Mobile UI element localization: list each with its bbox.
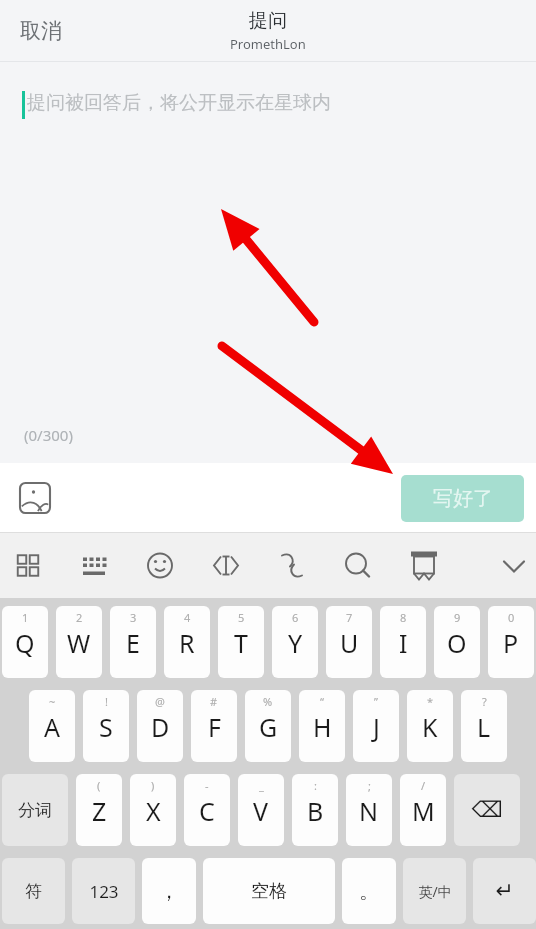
button[interactable]: / (400, 774, 446, 846)
button[interactable]: 123 (72, 858, 135, 924)
button[interactable]: Keyboard layout (66, 533, 99, 598)
button[interactable]: ! (83, 690, 129, 762)
staticText: # (210, 694, 218, 709)
staticText: * (427, 694, 434, 709)
staticText: (0/300) (24, 425, 73, 445)
staticText: D (151, 710, 170, 744)
staticText: Q (15, 626, 35, 660)
staticText: 写好了 (433, 486, 493, 511)
button[interactable]: @ (137, 690, 183, 762)
staticText: ; (368, 778, 371, 793)
staticText: ~ (49, 694, 56, 709)
button[interactable]: Text selection (198, 533, 231, 598)
staticText: 3 (130, 610, 137, 625)
staticText: L (477, 710, 491, 744)
button[interactable]: % (245, 690, 291, 762)
button[interactable]: * (407, 690, 453, 762)
button[interactable]: 0 (488, 606, 534, 678)
button[interactable]: # (191, 690, 237, 762)
button[interactable]: Emoji (132, 533, 165, 598)
button[interactable]: 3 (110, 606, 156, 678)
staticText: 取消 (20, 18, 62, 44)
button[interactable]: - (184, 774, 230, 846)
button[interactable]: ; (346, 774, 392, 846)
staticText: M (412, 794, 435, 828)
button[interactable]: 。 (342, 858, 396, 924)
button[interactable]: : (292, 774, 338, 846)
button[interactable]: Search (330, 533, 363, 598)
button[interactable]: 7 (326, 606, 372, 678)
staticText: 提问被回答后，将公开显示在星球内 (27, 91, 331, 115)
button[interactable]: ， (142, 858, 196, 924)
staticText: 9 (454, 610, 461, 625)
staticText: F (208, 710, 221, 744)
button[interactable]: 9 (434, 606, 480, 678)
button[interactable]: 英/中 (403, 858, 466, 924)
button[interactable]: 分词 (2, 774, 68, 846)
staticText: ( (97, 778, 101, 793)
button[interactable]: Hide keyboard (474, 533, 518, 598)
staticText: ? (482, 694, 487, 709)
staticText: - (205, 778, 209, 793)
staticText: G (259, 710, 278, 744)
staticText: 英/中 (418, 882, 452, 901)
staticText: : (314, 778, 317, 793)
button[interactable]: ↵ (473, 858, 536, 924)
staticText: T (234, 626, 248, 660)
staticText: 。 (359, 879, 379, 904)
button[interactable]: ⌫ (454, 774, 520, 846)
staticText: 8 (400, 610, 407, 625)
staticText: PromethLon (230, 35, 306, 53)
button[interactable]: ~ (29, 690, 75, 762)
staticText: B (307, 794, 324, 828)
staticText: 1 (22, 610, 29, 625)
staticText: / (421, 778, 426, 793)
staticText: ⌫ (471, 797, 503, 823)
button[interactable]: 空格 (203, 858, 335, 924)
button[interactable]: ( (76, 774, 122, 846)
button[interactable]: Add image (10, 473, 60, 523)
staticText: J (373, 710, 380, 744)
staticText: O (447, 626, 467, 660)
staticText: “ (320, 694, 324, 709)
staticText: X (146, 794, 161, 828)
button[interactable]: 8 (380, 606, 426, 678)
staticText: _ (259, 778, 264, 793)
staticText: R (179, 626, 195, 660)
button[interactable]: Apps (0, 533, 33, 598)
staticText: 5 (238, 610, 245, 625)
staticText: 123 (89, 880, 119, 903)
staticText: V (253, 794, 269, 828)
staticText: W (67, 626, 91, 660)
button[interactable]: 符 (2, 858, 65, 924)
button[interactable]: Attach (264, 533, 297, 598)
button[interactable]: Stickers (396, 533, 429, 598)
button[interactable]: 写好了 (401, 475, 524, 522)
button[interactable]: “ (299, 690, 345, 762)
staticText: 4 (184, 610, 191, 625)
button[interactable]: ” (353, 690, 399, 762)
staticText: ” (374, 694, 378, 709)
button[interactable]: ) (130, 774, 176, 846)
staticText: 7 (346, 610, 353, 625)
staticText: S (99, 710, 113, 744)
button[interactable]: ? (461, 690, 507, 762)
button[interactable]: 4 (164, 606, 210, 678)
staticText: K (422, 710, 438, 744)
button[interactable]: 5 (218, 606, 264, 678)
staticText: 分词 (18, 800, 52, 821)
staticText: I (399, 626, 408, 660)
button[interactable]: _ (238, 774, 284, 846)
staticText: Z (92, 794, 107, 828)
button[interactable]: 取消 (0, 0, 82, 62)
staticText: 6 (292, 610, 299, 625)
button[interactable]: 1 (2, 606, 48, 678)
staticText: 提问 (249, 9, 287, 33)
button[interactable]: 2 (56, 606, 102, 678)
staticText: @ (155, 694, 165, 709)
staticText: % (263, 694, 273, 709)
staticText: N (359, 794, 379, 828)
staticText: C (199, 794, 215, 828)
button[interactable]: 6 (272, 606, 318, 678)
staticText: U (340, 626, 359, 660)
